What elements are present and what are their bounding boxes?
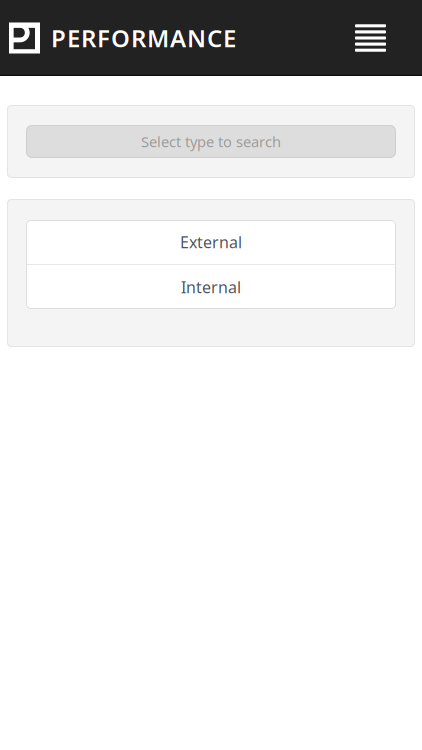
button[interactable]: Open menu [346,12,395,64]
staticText: External [180,231,242,253]
staticText: PERFORMANCE [51,22,236,54]
staticText: Select type to search [141,132,281,151]
button[interactable]: Select type to search [26,125,396,158]
staticText: Internal [181,276,241,298]
button[interactable]: Internal [26,265,396,309]
button[interactable]: External [26,220,396,264]
